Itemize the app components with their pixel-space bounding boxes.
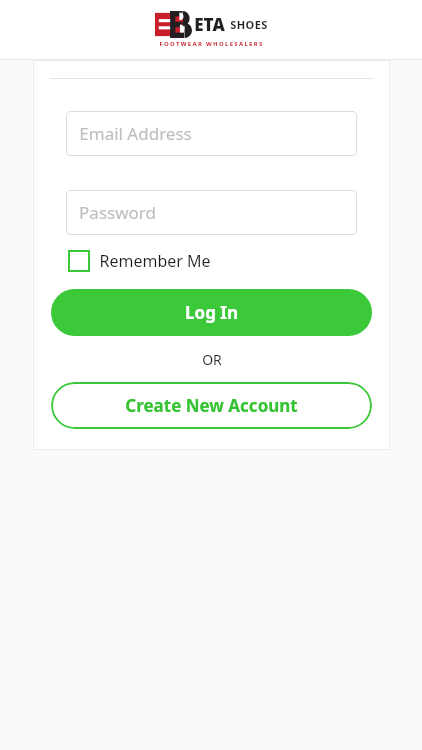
button[interactable]: Create New Account — [51, 382, 372, 429]
staticText: Create New Account — [125, 394, 298, 417]
button[interactable]: Log In — [51, 289, 372, 336]
staticText: FOOTWEAR WHOLESALERS — [159, 40, 264, 48]
staticText: OR — [202, 350, 222, 369]
staticText: ETA — [194, 13, 225, 36]
staticText: Remember Me — [99, 250, 211, 272]
button[interactable]: Email Address — [66, 111, 357, 156]
staticText: Log In — [185, 301, 238, 324]
staticText: Email Address — [79, 122, 192, 145]
staticText: SHOES — [230, 17, 268, 32]
button[interactable]: Password — [66, 190, 357, 235]
staticText: Password — [79, 201, 156, 224]
button[interactable]: Remember Me — [68, 248, 211, 274]
